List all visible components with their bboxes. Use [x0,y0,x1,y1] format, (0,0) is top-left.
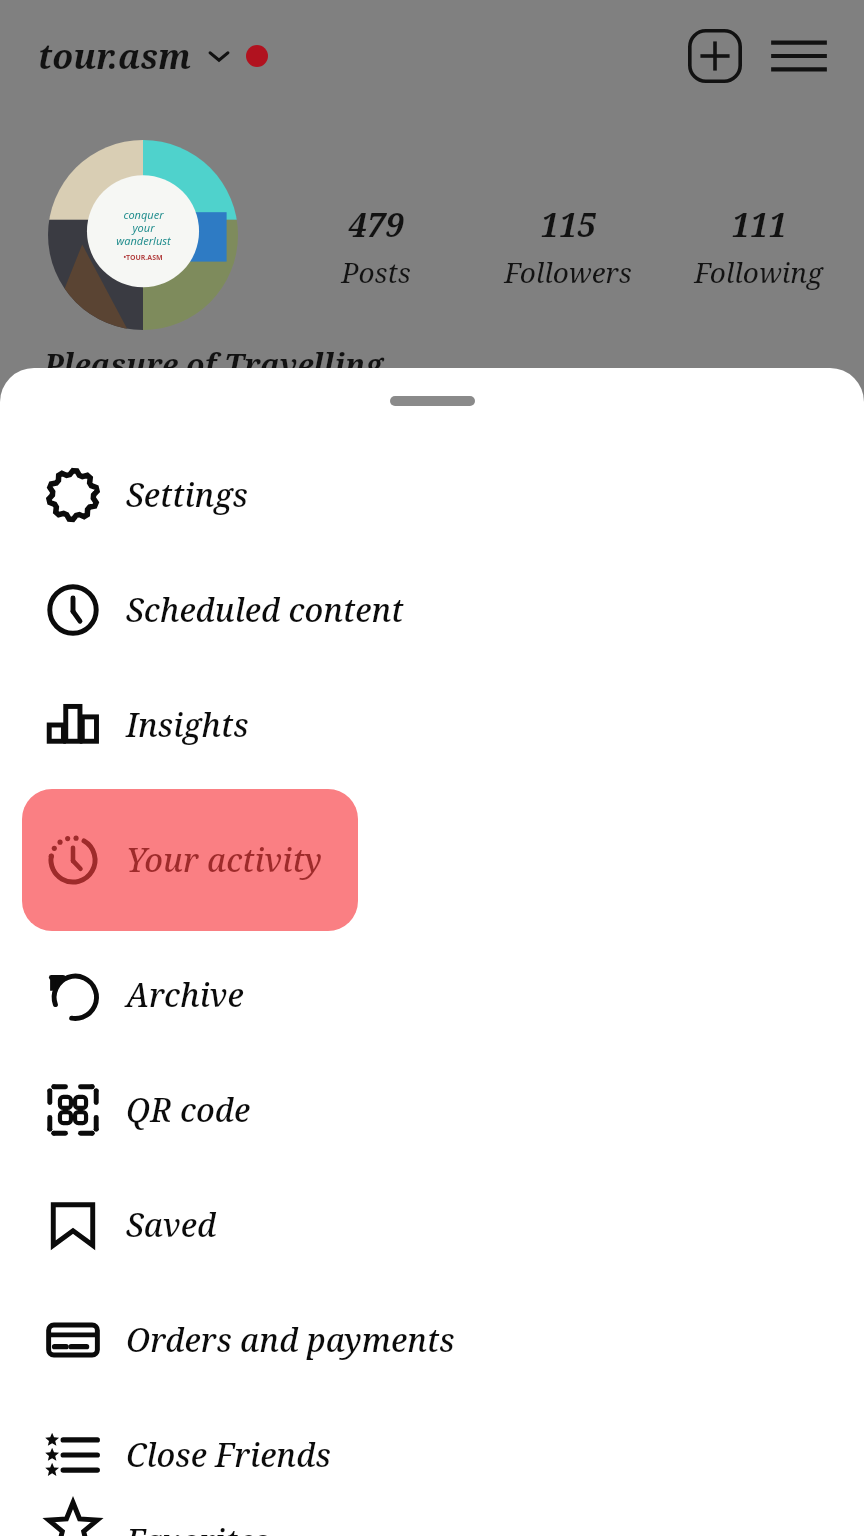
button[interactable]: conquer your wanderlust [48,140,238,330]
button[interactable]: 479 [280,202,472,291]
staticText: Settings [126,473,248,517]
staticText: Your activity [126,838,323,882]
button[interactable]: Your activity [22,789,358,931]
staticText: Scheduled content [126,588,404,632]
staticText: 115 [540,202,596,247]
staticText: Followers [504,253,632,291]
button[interactable]: Saved [22,1174,842,1276]
button[interactable]: Favorites [22,1519,842,1536]
staticText: •TOUR.ASM [123,253,163,263]
staticText: Archive [126,973,244,1017]
staticText: Favorites [126,1519,270,1536]
staticText: Following [694,253,823,291]
button[interactable]: 111 [663,202,854,291]
button[interactable]: QR code [22,1059,842,1161]
button[interactable]: Scheduled content [22,559,842,661]
staticText: Saved [126,1203,217,1247]
staticText: conquer your wanderlust [116,207,171,248]
button[interactable]: tour.asm [38,33,268,79]
staticText: tour.asm [38,33,192,79]
button[interactable]: Menu [762,19,836,93]
staticText: Pleasure of Travelling [44,344,383,385]
staticText: 111 [731,202,787,247]
staticText: Insights [126,703,249,747]
button[interactable]: Close Friends [22,1404,842,1506]
button[interactable]: Insights [22,674,842,776]
button[interactable]: 115 [472,202,663,291]
button[interactable]: Archive [22,944,842,1046]
staticText: Posts [341,253,411,291]
button[interactable]: Orders and payments [22,1289,842,1391]
staticText: QR code [126,1088,251,1132]
staticText: 479 [348,202,404,247]
staticText: Close Friends [126,1433,331,1477]
button[interactable]: Settings [22,444,842,546]
staticText: Orders and payments [126,1318,455,1362]
button[interactable]: Create [678,19,752,93]
